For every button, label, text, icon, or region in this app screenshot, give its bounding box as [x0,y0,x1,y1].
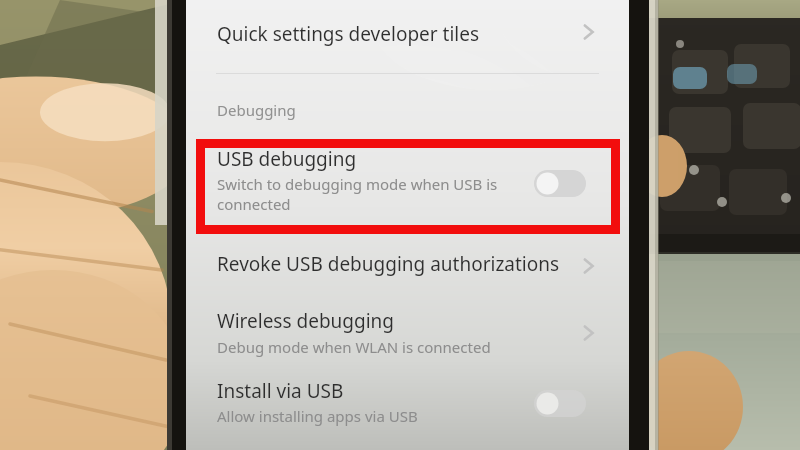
staticText: connected [217,194,291,214]
staticText: Revoke USB debugging authorizations [217,251,560,277]
button[interactable]: Revoke USB debugging authorizations [186,243,629,289]
button[interactable]: Open [577,19,603,45]
button[interactable]: Open [577,320,603,346]
staticText: Allow installing apps via USB [217,406,418,426]
staticText: Switch to debugging mode when USB is [217,174,498,194]
button[interactable]: Install via USB [186,378,629,438]
button[interactable]: Quick settings developer tiles [186,8,629,56]
staticText: Quick settings developer tiles [217,21,480,47]
button[interactable]: USB debugging [186,146,629,228]
staticText: USB debugging [217,146,357,172]
staticText: Wireless debugging [217,308,395,334]
button[interactable]: Open [577,253,603,279]
button[interactable]: Wireless debugging [186,306,629,360]
staticText: Install via USB [217,378,344,404]
staticText: Debug mode when WLAN is connected [217,337,491,357]
staticText: Debugging [217,100,296,120]
button[interactable]: USB debugging [534,170,586,197]
button[interactable]: Install via USB [534,390,586,417]
